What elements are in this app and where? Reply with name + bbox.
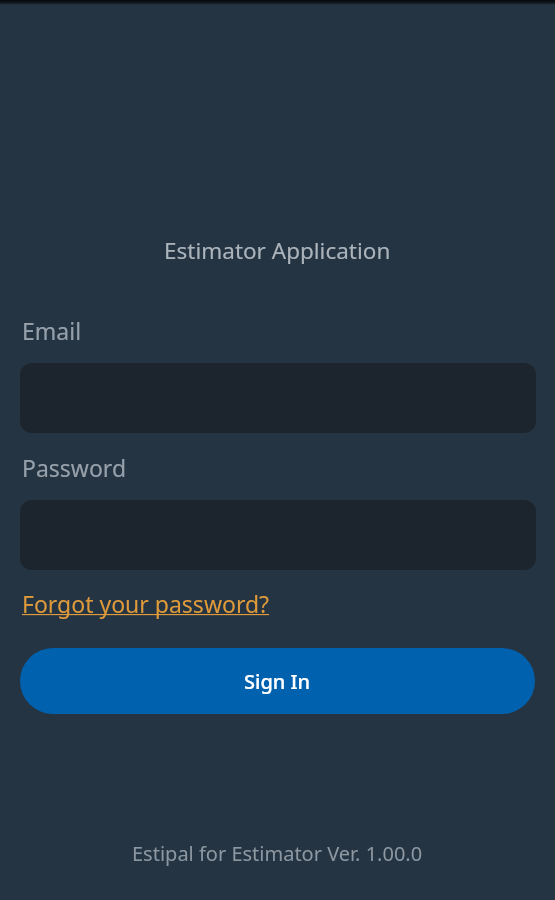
staticText: Email (22, 315, 82, 346)
staticText: Password (22, 452, 127, 483)
button[interactable]: Sign In (20, 648, 535, 714)
staticText: Estimator Application (164, 235, 391, 266)
staticText: Sign In (244, 668, 311, 695)
button[interactable]: Forgot your password? (22, 588, 270, 619)
staticText: Estipal for Estimator Ver. 1.00.0 (132, 840, 423, 867)
